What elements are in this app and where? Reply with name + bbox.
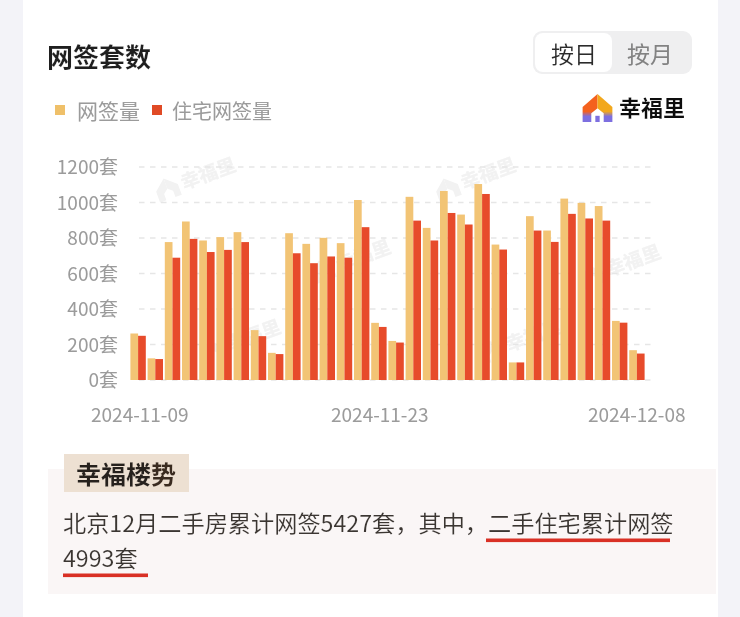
button[interactable]: 按月 [614,31,686,74]
button[interactable]: 幸福里 [582,90,686,122]
staticText: 400套 [23,294,118,322]
staticText: 网签量 [77,95,140,125]
staticText: 2024-12-08 [588,400,686,428]
staticText: 网签套数 [47,37,152,75]
button[interactable]: 按日 [535,33,612,72]
staticText: 幸福楼势 [76,455,177,491]
staticText: 幸福里 [331,231,395,277]
staticText: 幸福里 [501,311,565,357]
staticText: 北京12月二手房累计网签5427套，其中，二手住宅累计网签4993套 [63,505,701,574]
staticText: 1200套 [23,152,118,180]
staticText: 2024-11-23 [331,400,429,428]
staticText: 按月 [627,36,673,69]
staticText: 幸福里 [221,311,285,357]
staticText: 住宅网签量 [172,96,272,125]
staticText: 幸福里 [456,149,520,195]
staticText: 幸福里 [601,236,665,282]
staticText: 按日 [551,36,597,69]
staticText: 800套 [23,223,118,251]
staticText: 0套 [23,365,118,393]
staticText: 幸福里 [619,90,686,122]
staticText: 幸福里 [176,149,240,195]
staticText: 1000套 [23,188,118,216]
staticText: 600套 [23,259,118,287]
staticText: 200套 [23,330,118,358]
staticText: 2024-11-09 [91,400,189,428]
